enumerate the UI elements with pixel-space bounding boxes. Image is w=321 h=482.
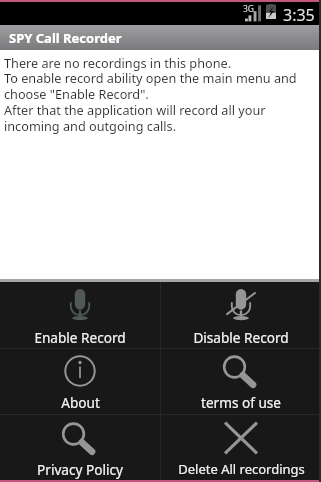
staticText: 3G	[243, 3, 255, 15]
button[interactable]: terms of use	[161, 349, 321, 414]
staticText: Disable Record	[193, 328, 289, 347]
staticText: SPY Call Recorder	[9, 29, 122, 47]
button[interactable]: Disable Record	[161, 282, 321, 348]
button[interactable]: Delete All recordings	[161, 415, 321, 480]
staticText: Enable Record	[34, 328, 126, 347]
staticText: About	[61, 393, 100, 412]
staticText: Delete All recordings	[178, 460, 305, 478]
button[interactable]: Enable Record	[0, 282, 160, 348]
staticText: terms of use	[201, 393, 281, 412]
staticText: There are no recordings in this phone. T…	[4, 54, 297, 135]
button[interactable]: About	[0, 349, 160, 414]
button[interactable]: Privacy Policy	[0, 415, 160, 480]
staticText: 3:35	[283, 4, 315, 26]
staticText: Privacy Policy	[37, 460, 123, 479]
